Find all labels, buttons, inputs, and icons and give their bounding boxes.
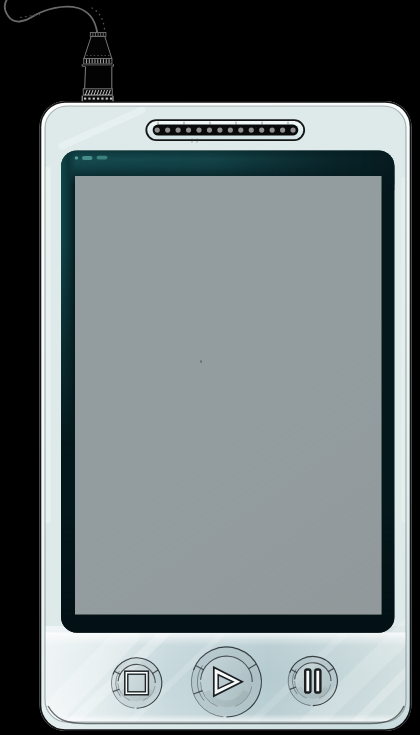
button[interactable]: Portable media player illustration [0,0,420,735]
